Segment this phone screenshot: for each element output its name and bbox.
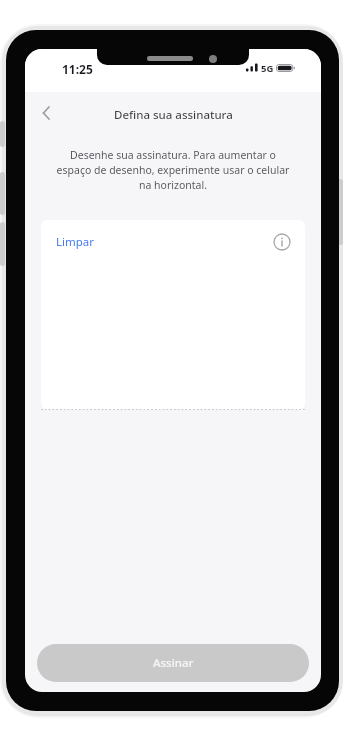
staticText: 5G <box>261 62 274 75</box>
button[interactable] <box>273 233 291 251</box>
staticText: 11:25 <box>62 61 93 77</box>
staticText: Defina sua assinatura <box>114 107 233 123</box>
button[interactable]: Assinar <box>37 644 309 682</box>
button[interactable]: Limpar <box>56 234 95 250</box>
button[interactable] <box>36 103 58 125</box>
staticText: Assinar <box>153 655 194 671</box>
staticText: Desenhe sua assinatura. Para aumentar o … <box>25 148 321 192</box>
